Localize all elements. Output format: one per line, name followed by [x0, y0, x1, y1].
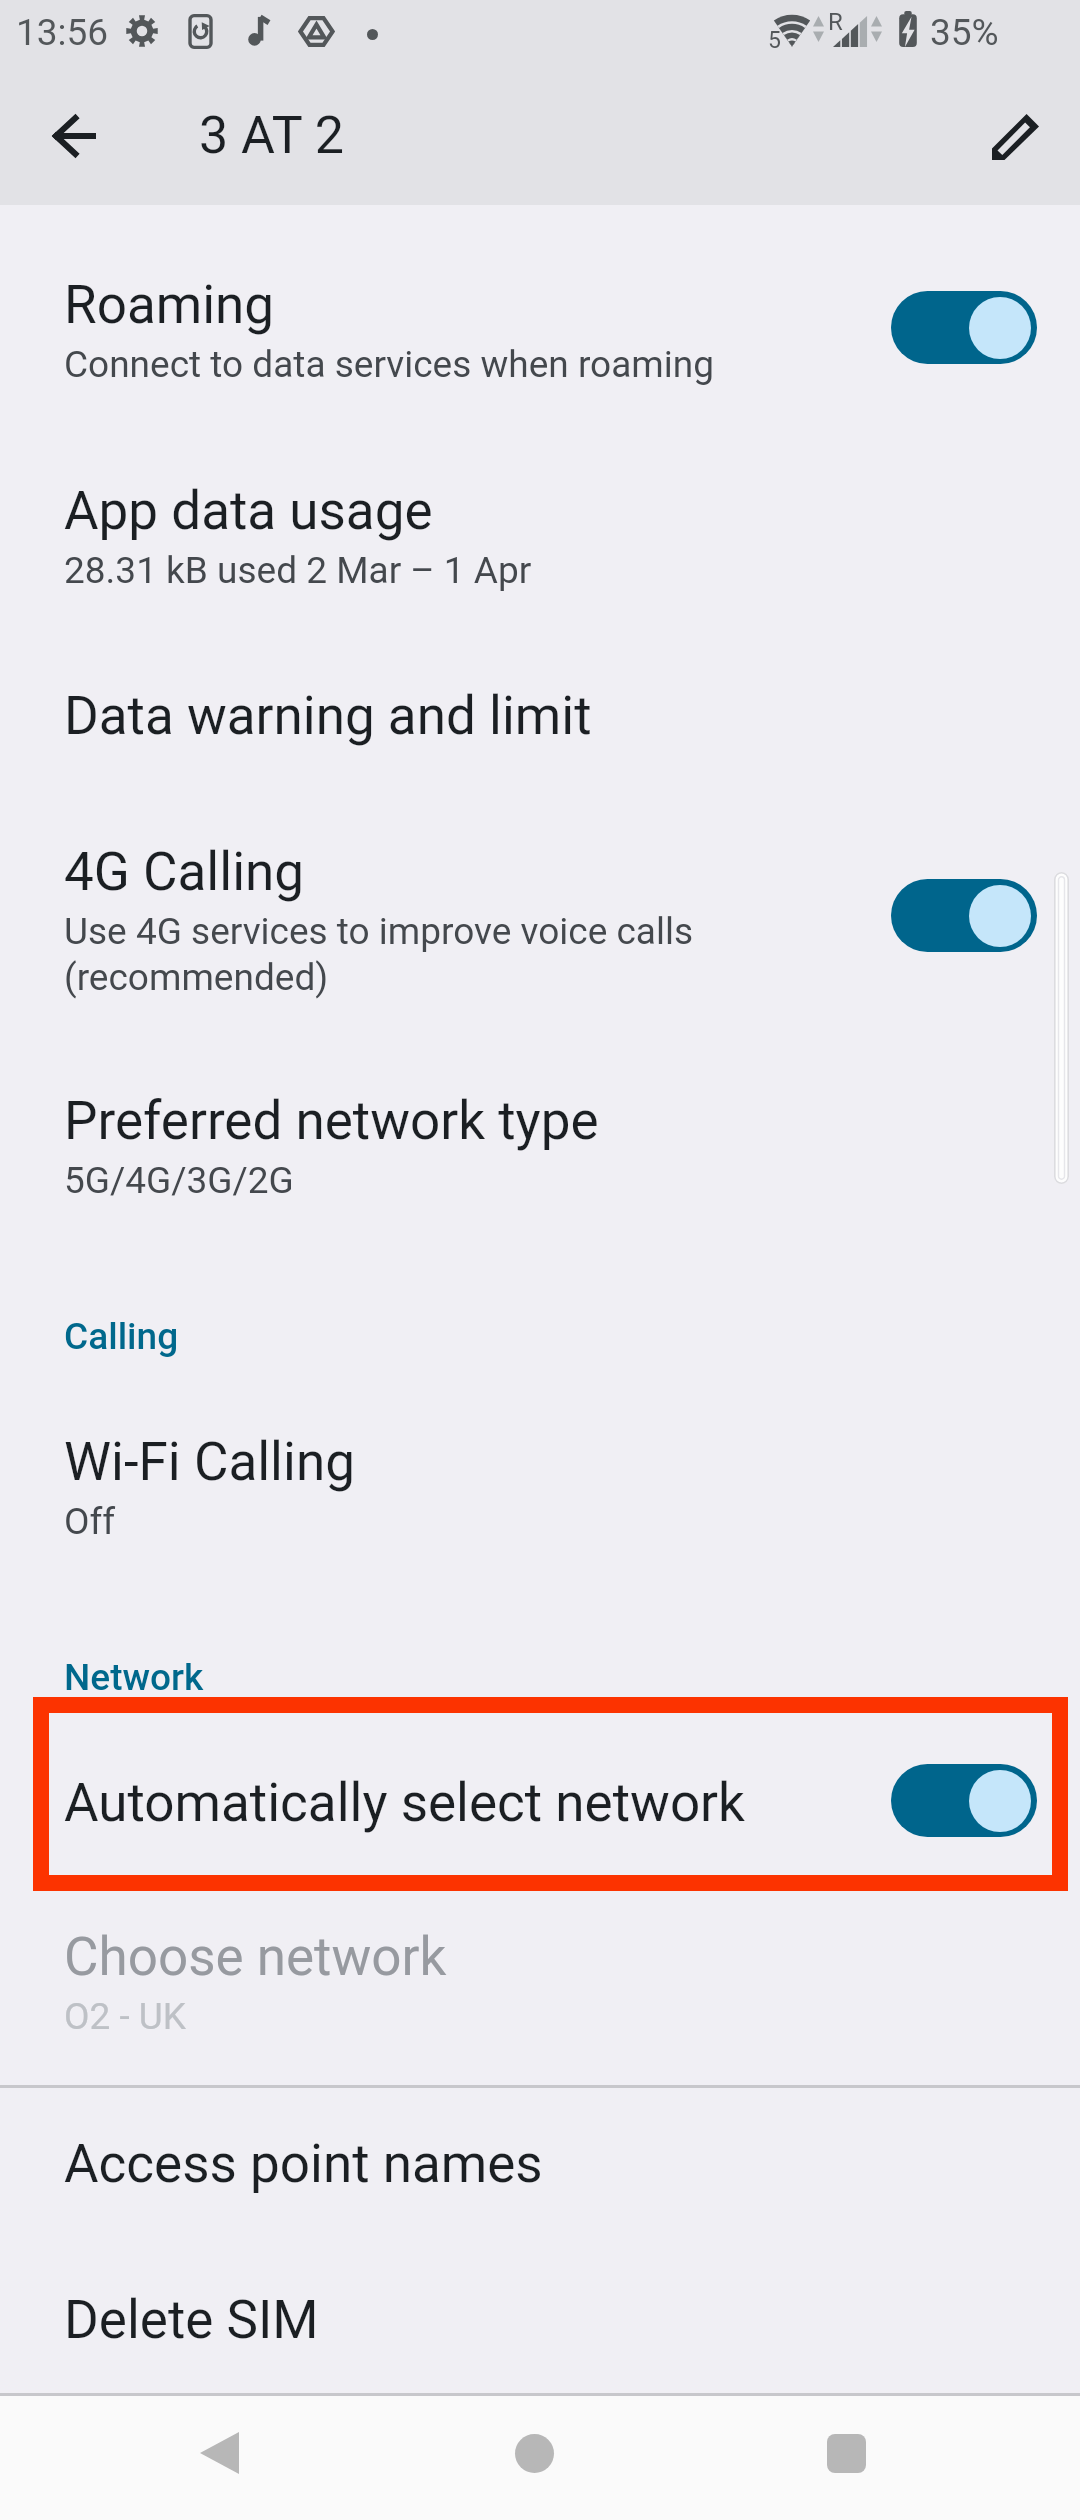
staticText: Preferred network type — [64, 1090, 599, 1152]
staticText: 13:56 — [16, 11, 109, 54]
button[interactable]: Edit — [976, 96, 1056, 176]
button[interactable]: Wi-Fi Calling — [0, 1380, 1080, 1540]
staticText: Network — [64, 1656, 204, 1699]
button[interactable]: Home — [474, 2391, 594, 2515]
button[interactable]: Automatically select network — [0, 1721, 1080, 1846]
button[interactable]: Navigate up — [34, 96, 114, 176]
staticText: Wi-Fi Calling — [64, 1431, 355, 1493]
staticText: 4G Calling — [64, 841, 305, 903]
staticText: 5G/4G/3G/2G — [64, 1159, 294, 1202]
staticText: 28.31 kB used 2 Mar – 1 Apr — [64, 549, 532, 592]
button[interactable]: App data usage — [0, 429, 1080, 589]
staticText: Data warning and limit — [64, 685, 592, 747]
button[interactable]: 4G Calling — [0, 790, 1080, 995]
staticText: Access point names — [64, 2133, 543, 2195]
button[interactable]: Data warning and limit — [0, 634, 1080, 759]
button[interactable]: Recent apps — [786, 2391, 906, 2515]
button[interactable]: Delete SIM — [0, 2238, 1080, 2363]
staticText: Choose network — [64, 1926, 447, 1988]
button[interactable]: Preferred network type — [0, 1039, 1080, 1199]
staticText: Connect to data services when roaming — [64, 343, 714, 386]
button[interactable]: Access point names — [0, 2082, 1080, 2207]
button[interactable]: Roaming — [0, 223, 1080, 383]
staticText: R — [828, 8, 843, 36]
staticText: App data usage — [64, 480, 433, 542]
staticText: Use 4G services to improve voice calls — [64, 910, 694, 953]
staticText: 35% — [930, 11, 999, 54]
staticText: Calling — [64, 1315, 179, 1358]
staticText: O2 - UK — [64, 1995, 187, 2038]
button[interactable]: Choose network — [0, 1875, 1080, 2035]
staticText: Off — [64, 1500, 116, 1543]
staticText: (recommended) — [64, 956, 329, 999]
button[interactable]: Back — [159, 2391, 279, 2515]
staticText: 5 — [768, 27, 781, 54]
staticText: Delete SIM — [64, 2289, 319, 2351]
staticText: Roaming — [64, 274, 275, 336]
staticText: Automatically select network — [64, 1772, 745, 1834]
staticText: 3 AT 2 — [199, 105, 344, 166]
